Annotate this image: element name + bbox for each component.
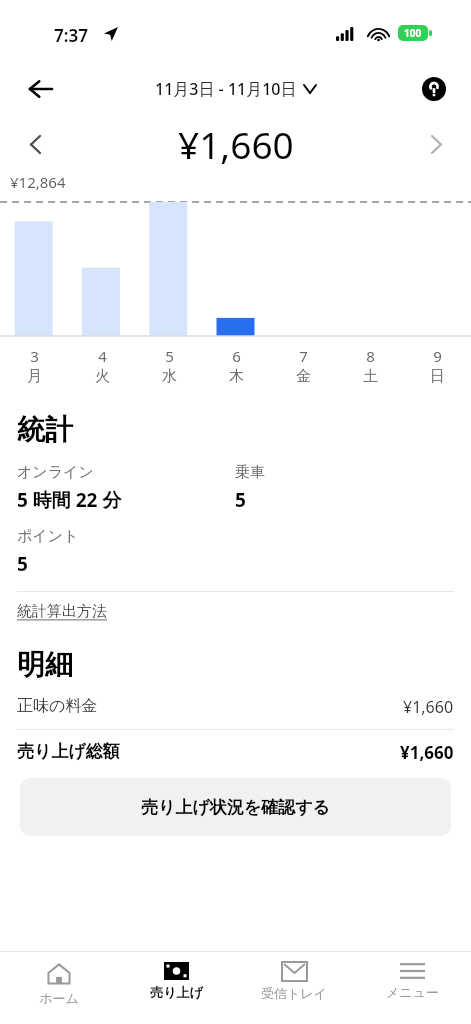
staticText: 8	[366, 346, 375, 366]
staticText: 乗車	[235, 463, 265, 482]
staticText: ¥1,660	[178, 119, 294, 169]
staticText: 4	[98, 346, 107, 366]
staticText: 3	[30, 346, 39, 366]
button[interactable]: Help	[411, 66, 457, 112]
staticText: メニュー	[386, 984, 439, 1000]
staticText: 火	[95, 367, 110, 386]
staticText: ¥12,864	[10, 172, 66, 192]
staticText: 5	[235, 487, 246, 513]
staticText: 水	[162, 367, 177, 386]
button[interactable]: メニュー	[353, 952, 471, 1000]
staticText: ホーム	[39, 990, 79, 1006]
staticText: ポイント	[17, 527, 79, 546]
staticText: 木	[229, 367, 244, 386]
staticText: 統計算出方法	[17, 602, 107, 621]
staticText: 7	[299, 346, 308, 366]
staticText: 6	[232, 346, 241, 366]
button[interactable]: 統計算出方法	[17, 602, 107, 621]
button[interactable]: Previous week	[12, 116, 58, 172]
button[interactable]: 受信トレイ	[235, 952, 353, 1001]
staticText: オンライン	[17, 463, 94, 482]
staticText: 正味の料金	[17, 696, 98, 716]
button[interactable]: 11月3日 - 11月10日	[155, 78, 316, 100]
staticText: 5	[17, 551, 28, 577]
staticText: 受信トレイ	[261, 985, 327, 1001]
staticText: 11月3日 - 11月10日	[155, 78, 297, 100]
staticText: 9	[433, 346, 442, 366]
staticText: ¥1,660	[400, 741, 454, 764]
staticText: 売り上げ	[150, 984, 203, 1000]
staticText: 売り上げ総額	[17, 741, 120, 762]
staticText: 金	[296, 367, 311, 386]
button[interactable]: 売り上げ状況を確認する	[20, 778, 451, 836]
staticText: 5 時間 22 分	[17, 487, 122, 513]
staticText: 月	[27, 367, 42, 386]
button[interactable]: Next week	[413, 116, 459, 172]
staticText: 土	[363, 367, 378, 386]
button[interactable]: Back	[14, 62, 68, 116]
staticText: ¥1,660	[403, 696, 454, 718]
staticText: 5	[165, 346, 174, 366]
staticText: 明細	[17, 647, 73, 682]
button[interactable]: 売り上げ	[117, 952, 235, 1000]
staticText: 統計	[17, 412, 73, 447]
staticText: 100	[404, 26, 422, 40]
staticText: 売り上げ状況を確認する	[141, 797, 330, 818]
staticText: 7:37	[54, 24, 88, 47]
staticText: 日	[430, 367, 445, 386]
button[interactable]: ホーム	[0, 952, 117, 1006]
